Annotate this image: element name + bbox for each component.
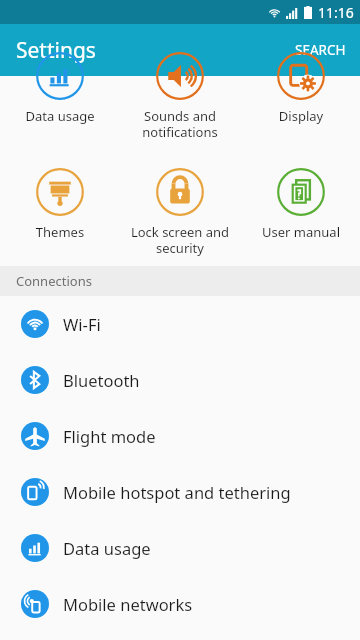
button[interactable]: Mobile hotspot and tethering: [0, 464, 360, 520]
other: Wi-Fi signal: [268, 6, 281, 19]
staticText: Sounds and notifications: [122, 107, 238, 140]
button[interactable]: Data usage: [0, 520, 360, 576]
button[interactable]: Themes: [2, 168, 118, 256]
button[interactable]: Wi-Fi: [0, 296, 360, 352]
button[interactable]: SEARCH: [281, 27, 360, 73]
staticText: Data usage: [2, 107, 118, 125]
staticText: SEARCH: [295, 41, 346, 59]
button[interactable]: Data usage: [2, 52, 118, 140]
button[interactable]: User manual: [243, 168, 359, 256]
button[interactable]: Display: [243, 52, 359, 140]
button[interactable]: Lock screen and security: [122, 168, 238, 256]
button[interactable]: Mobile networks: [0, 576, 360, 632]
staticText: User manual: [243, 223, 359, 241]
staticText: 11:16: [318, 3, 354, 22]
staticText: Mobile hotspot and tethering: [63, 481, 291, 503]
other: Battery: [304, 6, 312, 19]
staticText: Lock screen and security: [122, 223, 238, 256]
staticText: Mobile networks: [63, 593, 193, 615]
button[interactable]: Flight mode: [0, 408, 360, 464]
other: Cellular signal: [286, 7, 298, 19]
staticText: Settings: [16, 36, 96, 65]
staticText: Connections: [16, 272, 92, 290]
button[interactable]: Bluetooth: [0, 352, 360, 408]
staticText: Wi-Fi: [63, 313, 101, 335]
staticText: Data usage: [63, 537, 151, 559]
staticText: Bluetooth: [63, 369, 140, 391]
staticText: Display: [243, 107, 359, 125]
button[interactable]: Sounds and notifications: [122, 52, 238, 140]
staticText: Flight mode: [63, 425, 156, 447]
staticText: Themes: [2, 223, 118, 241]
